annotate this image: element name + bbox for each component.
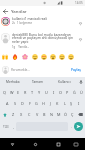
button[interactable]: H (40, 98, 47, 109)
button[interactable]: Ü (78, 87, 85, 98)
button[interactable]: I (75, 98, 82, 109)
button[interactable]: Emoji reaction (20, 51, 30, 62)
staticText: N (50, 112, 53, 117)
staticText: T (31, 90, 34, 95)
button[interactable]: K (54, 98, 61, 109)
button[interactable]: F (26, 98, 33, 109)
button[interactable]: ?123 (0, 122, 11, 131)
staticText: Kullanıcı (58, 80, 71, 84)
staticText: M (57, 112, 61, 117)
button[interactable]: M (55, 109, 62, 120)
button[interactable]: Back (8, 140, 17, 149)
button[interactable]: destek880 Bunu bol mutlu kazandıran efen… (1, 32, 83, 50)
button[interactable]: O (57, 87, 64, 98)
button[interactable]: Emoji reaction (66, 51, 75, 62)
button[interactable]: Emoji reaction (0, 51, 10, 62)
button[interactable]: Paylaş (70, 67, 82, 73)
button[interactable]: Emoji reaction (48, 51, 57, 62)
button[interactable]: L (61, 98, 68, 109)
staticText: H (42, 101, 45, 106)
button[interactable]: Shift (0, 109, 9, 120)
button[interactable]: J (47, 98, 54, 109)
staticText: , (13, 125, 14, 129)
staticText: S (14, 101, 17, 106)
button[interactable]: Emoji reaction (10, 51, 20, 62)
button[interactable]: R (22, 87, 29, 98)
button[interactable]: N (48, 109, 55, 120)
button[interactable]: Kullanıcı (51, 77, 77, 87)
staticText: F (29, 101, 31, 106)
staticText: I (53, 90, 55, 95)
button[interactable]: Like (77, 36, 83, 42)
staticText: kullanici1 maviadi reali (12, 16, 48, 20)
staticText: C (28, 112, 31, 117)
button[interactable]: Home (31, 140, 40, 149)
button[interactable]: Ö (62, 109, 69, 120)
staticText: D (21, 101, 24, 106)
button[interactable]: Emoji reaction (30, 51, 39, 62)
button[interactable]: Like (77, 20, 83, 26)
button[interactable]: Back (0, 6, 10, 16)
staticText: Ö (64, 112, 67, 117)
staticText: L (64, 101, 66, 106)
button[interactable]: Backspace (76, 109, 85, 120)
staticText: 14:05 (75, 1, 83, 5)
staticText: Paylaş (71, 68, 81, 72)
button[interactable]: Emoji reaction (57, 51, 66, 62)
button[interactable]: Z (9, 109, 17, 120)
button[interactable]: P (64, 87, 71, 98)
staticText: . (71, 125, 72, 129)
button[interactable]: Switch keyboard (72, 140, 80, 148)
button[interactable]: I (50, 87, 57, 98)
staticText: E (17, 90, 20, 95)
staticText: A (6, 101, 9, 106)
button[interactable]: Send (74, 122, 83, 131)
staticText: Ğ (73, 90, 76, 95)
button[interactable]: Recents (54, 140, 63, 149)
button[interactable]: . (69, 122, 73, 131)
button[interactable]: U (43, 87, 50, 98)
staticText: O (59, 90, 62, 95)
staticText: W (10, 90, 14, 95)
button[interactable]: Merhaba (0, 77, 25, 87)
button[interactable]: , (11, 122, 15, 131)
staticText: Tamam (32, 80, 44, 84)
staticText: Y (38, 90, 41, 95)
staticText: B (43, 112, 46, 117)
staticText: P (66, 90, 69, 95)
button[interactable]: Y (36, 87, 43, 98)
staticText: Ü (80, 90, 83, 95)
button[interactable]: S (11, 98, 19, 109)
button[interactable]: kullanici1 maviadi reali (1, 16, 83, 30)
staticText: J (50, 101, 52, 106)
staticText: Q (3, 90, 6, 95)
button[interactable]: E (15, 87, 22, 98)
staticText: V (36, 112, 39, 117)
staticText: Yanıtlar (11, 8, 27, 14)
button[interactable]: B (41, 109, 48, 120)
staticText: I (78, 101, 80, 106)
staticText: Ş (70, 101, 73, 106)
button[interactable]: Tamam (25, 77, 51, 87)
staticText: U (45, 90, 48, 95)
button[interactable]: V (33, 109, 41, 120)
button[interactable]: Q (0, 87, 8, 98)
button[interactable]: T (29, 87, 36, 98)
button[interactable]: D (19, 98, 26, 109)
button[interactable]: C (25, 109, 33, 120)
button[interactable]: Ş (68, 98, 75, 109)
staticText: G (35, 101, 38, 106)
staticText: destek880 Bunu bol mutlu kazandıran efen… (12, 32, 77, 44)
button[interactable]: Voice input (77, 77, 85, 87)
button[interactable]: W (8, 87, 15, 98)
staticText: R (24, 90, 27, 95)
button[interactable]: Ç (69, 109, 76, 120)
button[interactable]: A (3, 98, 11, 109)
button[interactable]: Emoji reaction (39, 51, 48, 62)
button[interactable]: Ğ (71, 87, 78, 98)
staticText: 1g Yanıtla... (12, 45, 30, 49)
button[interactable]: G (33, 98, 40, 109)
staticText: Yorum ekle... (11, 68, 70, 72)
button[interactable]: X (17, 109, 25, 120)
